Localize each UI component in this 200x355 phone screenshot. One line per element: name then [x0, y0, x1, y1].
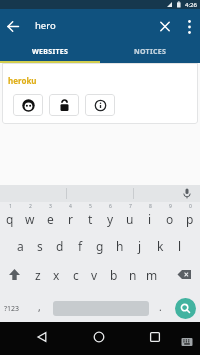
staticText: w: [25, 211, 35, 227]
staticText: 0: [189, 203, 192, 210]
button[interactable]: [0, 9, 26, 40]
staticText: 1: [9, 203, 12, 210]
button[interactable]: g: [90, 231, 110, 260]
staticText: v: [91, 267, 98, 283]
staticText: s: [37, 238, 43, 254]
button[interactable]: [87, 325, 111, 349]
button[interactable]: 1: [0, 202, 20, 231]
staticText: n: [129, 267, 137, 283]
staticText: 4:26: [185, 1, 197, 9]
button[interactable]: .: [159, 300, 162, 314]
staticText: g: [96, 238, 104, 254]
button[interactable]: x: [47, 260, 66, 289]
button[interactable]: f: [70, 231, 90, 260]
button[interactable]: 2: [20, 202, 40, 231]
button[interactable]: 9: [160, 202, 180, 231]
staticText: 5: [89, 203, 92, 210]
staticText: b: [110, 267, 118, 283]
button[interactable]: ,: [38, 300, 41, 314]
staticText: p: [186, 211, 194, 227]
button[interactable]: n: [123, 260, 142, 289]
staticText: u: [126, 211, 134, 227]
button[interactable]: [180, 335, 194, 349]
staticText: l: [178, 238, 182, 254]
staticText: k: [157, 238, 164, 254]
staticText: c: [73, 267, 79, 283]
button[interactable]: d: [50, 231, 70, 260]
staticText: f: [78, 238, 83, 254]
button[interactable]: 3: [40, 202, 60, 231]
button[interactable]: 4: [60, 202, 80, 231]
button[interactable]: ?123: [4, 304, 20, 314]
staticText: 8: [149, 203, 152, 210]
button[interactable]: [13, 94, 43, 116]
button[interactable]: v: [85, 260, 104, 289]
staticText: 9: [169, 203, 172, 210]
button[interactable]: 5: [80, 202, 100, 231]
staticText: 7: [129, 203, 132, 210]
button[interactable]: [161, 260, 198, 289]
button[interactable]: NOTICES: [100, 40, 200, 63]
staticText: a: [17, 238, 24, 254]
staticText: hero: [35, 19, 56, 32]
staticText: r: [68, 211, 73, 227]
staticText: z: [35, 267, 41, 283]
button[interactable]: [175, 298, 196, 319]
button[interactable]: 8: [140, 202, 160, 231]
button[interactable]: a: [10, 231, 30, 260]
staticText: 2: [29, 203, 32, 210]
button[interactable]: [0, 260, 28, 289]
staticText: NOTICES: [134, 47, 167, 57]
button[interactable]: WEBSITES: [0, 40, 100, 63]
staticText: d: [56, 238, 64, 254]
button[interactable]: [180, 9, 200, 40]
button[interactable]: [85, 94, 115, 116]
staticText: j: [138, 238, 142, 254]
button[interactable]: z: [28, 260, 47, 289]
button[interactable]: c: [66, 260, 85, 289]
button[interactable]: 6: [100, 202, 120, 231]
button[interactable]: s: [30, 231, 50, 260]
button[interactable]: k: [150, 231, 170, 260]
staticText: t: [88, 211, 93, 227]
staticText: 6: [109, 203, 112, 210]
staticText: q: [6, 211, 14, 227]
staticText: i: [148, 211, 152, 227]
button[interactable]: h: [110, 231, 130, 260]
button[interactable]: [154, 9, 176, 40]
button[interactable]: [49, 94, 79, 116]
staticText: h: [116, 238, 124, 254]
staticText: 3: [49, 203, 52, 210]
button[interactable]: heroku: [8, 75, 37, 86]
staticText: m: [146, 267, 158, 283]
button[interactable]: [143, 325, 167, 349]
button[interactable]: [30, 325, 54, 349]
button[interactable]: b: [104, 260, 123, 289]
staticText: y: [107, 211, 114, 227]
button[interactable]: 7: [120, 202, 140, 231]
button[interactable]: 0: [180, 202, 200, 231]
staticText: e: [47, 211, 54, 227]
staticText: 4: [69, 203, 72, 210]
button[interactable]: l: [170, 231, 190, 260]
staticText: x: [53, 267, 60, 283]
staticText: o: [166, 211, 174, 227]
button[interactable]: j: [130, 231, 150, 260]
staticText: WEBSITES: [32, 47, 69, 57]
button[interactable]: m: [142, 260, 161, 289]
